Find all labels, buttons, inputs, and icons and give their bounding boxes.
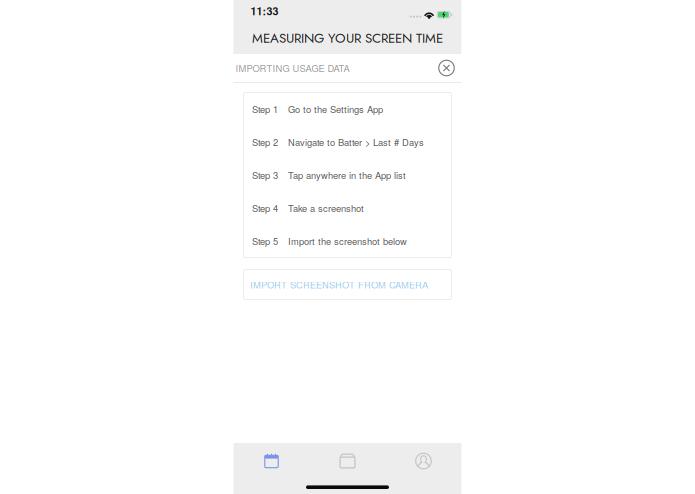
staticText: IMPORTING USAGE DATA	[235, 61, 349, 75]
staticText: Tap anywhere in the App list	[288, 168, 406, 182]
staticText: Go to the Settings App	[288, 102, 383, 116]
button[interactable]: Calendar	[233, 446, 309, 476]
staticText: IMPORT SCREENSHOT FROM CAMERA	[250, 278, 428, 291]
staticText: Step 3	[252, 168, 278, 182]
staticText: Step 5	[252, 234, 278, 248]
staticText: Take a screenshot	[288, 201, 364, 215]
staticText: Step 1	[252, 102, 278, 116]
staticText: Navigate to Batter > Last # Days	[288, 135, 424, 149]
staticText: 11:33	[250, 3, 278, 19]
staticText: Import the screenshot below	[288, 234, 407, 248]
button[interactable]: Close	[433, 55, 459, 81]
staticText: MEASURING YOUR SCREEN TIME	[252, 28, 443, 48]
button[interactable]: Profile	[385, 446, 461, 476]
button[interactable]: Archive	[309, 446, 385, 476]
staticText: Step 4	[252, 201, 278, 215]
staticText: Step 2	[252, 135, 278, 149]
button[interactable]: IMPORT SCREENSHOT FROM CAMERA	[243, 269, 452, 300]
